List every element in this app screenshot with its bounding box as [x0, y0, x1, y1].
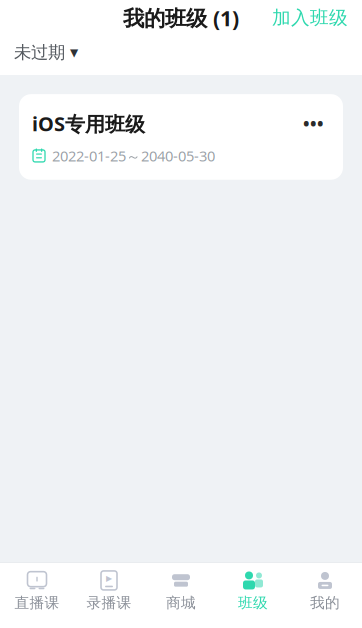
staticText: 未过期 [14, 42, 65, 63]
staticText: 录播课 [86, 594, 131, 612]
staticText: ▶ [106, 574, 112, 583]
staticText: ▼ [70, 46, 78, 58]
button[interactable]: 未过期 [0, 37, 92, 68]
button[interactable]: 直播课 [1, 563, 73, 617]
staticText: 我的 [310, 594, 340, 612]
staticText: 2022-01-25～2040-05-30 [52, 146, 215, 166]
button[interactable]: 商城 [145, 563, 217, 617]
staticText: ••• [303, 112, 324, 135]
staticText: 我的班级 (1) [123, 4, 239, 32]
button[interactable]: ▶ [73, 563, 145, 617]
button[interactable]: 我的 [289, 563, 361, 617]
button[interactable]: iOS专用班级 [19, 94, 343, 180]
button[interactable]: 班级 [217, 563, 289, 617]
staticText: 加入班级 [272, 6, 348, 29]
staticText: 直播课 [14, 594, 59, 612]
button[interactable]: 加入班级 [258, 0, 362, 35]
staticText: 商城 [166, 594, 196, 612]
staticText: 班级 [238, 594, 268, 612]
button[interactable]: 更多 [297, 108, 330, 139]
staticText: iOS专用班级 [32, 110, 145, 137]
